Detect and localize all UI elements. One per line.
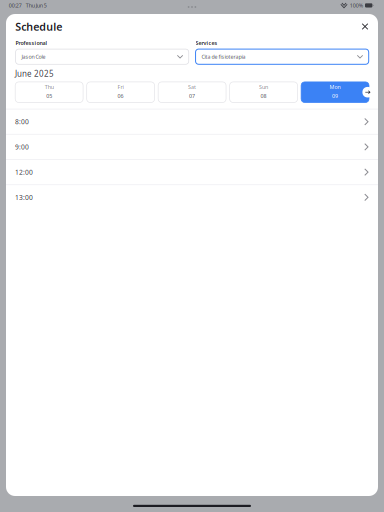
staticText: 09 [332, 92, 338, 99]
button[interactable]: 13:00 [6, 184, 378, 209]
button[interactable]: Close [357, 18, 373, 34]
button[interactable]: 9:00 [6, 134, 378, 159]
staticText: Cita de fisioterapia [201, 53, 245, 60]
staticText: 100% [350, 2, 363, 9]
staticText: 13:00 [15, 193, 33, 202]
staticText: 00:27 [9, 2, 22, 9]
button[interactable]: Fri [87, 82, 155, 102]
staticText: 9:00 [15, 142, 29, 151]
staticText: 08 [261, 92, 267, 99]
staticText: Thu [45, 83, 54, 90]
button[interactable]: 8:00 [6, 109, 378, 134]
staticText: 06 [118, 92, 124, 99]
staticText: Sun [259, 83, 268, 90]
staticText: Jason Cole [22, 53, 46, 60]
button[interactable]: Thu [15, 82, 83, 102]
staticText: Fri [118, 83, 124, 90]
staticText: Services [195, 39, 217, 47]
staticText: Professional [16, 39, 48, 47]
staticText: 12:00 [15, 168, 33, 177]
button[interactable]: 12:00 [6, 159, 378, 184]
staticText: Schedule [15, 19, 62, 34]
button[interactable]: Next week [361, 85, 375, 99]
staticText: Sat [188, 83, 196, 90]
button[interactable]: Jason Cole [16, 49, 189, 64]
staticText: Thu Jun 5 [26, 2, 47, 9]
button[interactable]: Mon [301, 82, 369, 102]
staticText: 8:00 [15, 117, 29, 126]
staticText: 05 [46, 92, 52, 99]
staticText: 07 [189, 92, 195, 99]
staticText: Mon [330, 83, 341, 90]
staticText: June 2025 [15, 68, 54, 79]
button[interactable]: Sat [158, 82, 226, 102]
button[interactable]: Cita de fisioterapia [195, 49, 369, 64]
button[interactable]: Sun [230, 82, 297, 102]
